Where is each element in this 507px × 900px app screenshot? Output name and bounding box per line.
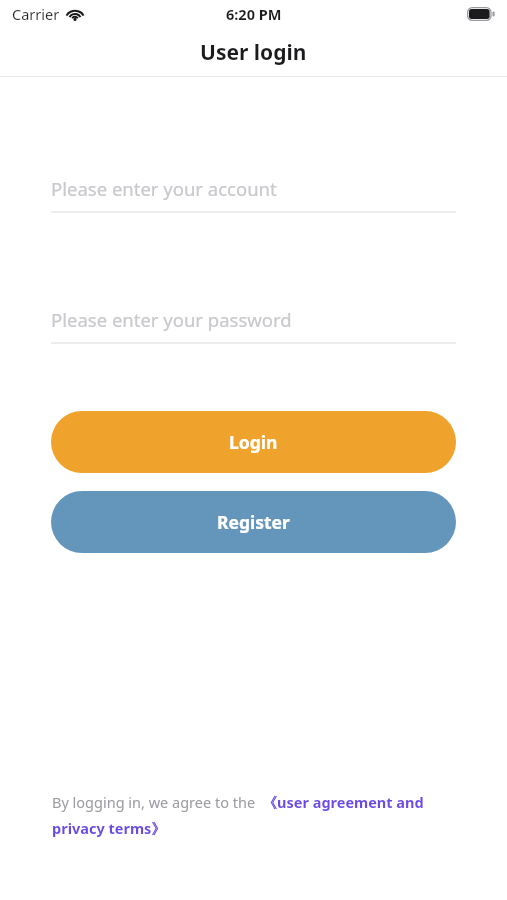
staticText: 6:20 PM [226, 4, 282, 24]
button[interactable]: Register [51, 491, 456, 553]
staticText: Login [229, 430, 278, 454]
staticText: Register [217, 510, 290, 534]
staticText: Carrier [12, 4, 60, 24]
staticText: User login [200, 38, 307, 67]
other: Wi-Fi signal [66, 7, 84, 21]
staticText: By logging in, we agree to the 《user agr… [52, 792, 467, 838]
button[interactable]: Login [51, 411, 456, 473]
other: Battery full [467, 7, 495, 21]
staticText: Please enter your password [51, 307, 292, 332]
button[interactable]: Please enter your password [51, 304, 456, 344]
button[interactable]: Please enter your account [51, 173, 456, 213]
button[interactable]: By logging in, we agree to the 《user agr… [52, 792, 467, 838]
staticText: Please enter your account [51, 176, 277, 201]
